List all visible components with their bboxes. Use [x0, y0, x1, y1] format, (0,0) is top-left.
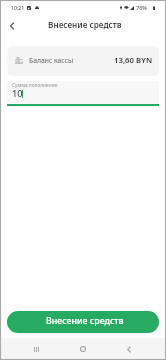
- button[interactable]: Back: [4, 17, 20, 33]
- staticText: 76%: [136, 4, 147, 11]
- staticText: 10: [12, 87, 23, 100]
- button[interactable]: Home: [69, 338, 97, 360]
- button[interactable]: Сумма пополнения: [7, 81, 159, 104]
- staticText: 10:21: [11, 4, 25, 11]
- button[interactable]: Back: [115, 338, 143, 360]
- button[interactable]: Внесение средств: [7, 311, 159, 333]
- button[interactable]: Баланс кассы: [7, 46, 159, 76]
- staticText: Сумма пополнения: [12, 82, 58, 89]
- staticText: 13,60 BYN: [114, 55, 153, 66]
- button[interactable]: Recent apps: [22, 338, 50, 360]
- staticText: Внесение средств: [48, 19, 122, 30]
- staticText: Баланс кассы: [29, 56, 74, 65]
- staticText: Внесение средств: [46, 315, 124, 327]
